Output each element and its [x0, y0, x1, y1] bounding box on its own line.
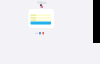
button[interactable]	[30, 21, 51, 24]
staticText: Inbox	[37, 0, 46, 5]
